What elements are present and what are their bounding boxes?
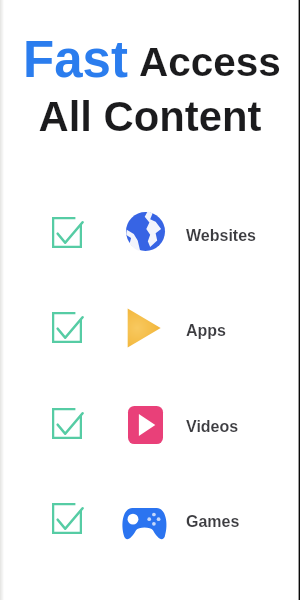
- staticText: Access: [139, 39, 281, 84]
- staticText: Games: [186, 513, 240, 531]
- staticText: Websites: [186, 227, 256, 245]
- other: Games: [121, 508, 168, 539]
- button[interactable]: Selected: [0, 495, 300, 541]
- other: Selected: [52, 408, 82, 439]
- other: Selected: [52, 312, 82, 343]
- staticText: Apps: [186, 322, 226, 340]
- other: Websites: [126, 211, 165, 252]
- other: Videos: [128, 406, 163, 444]
- staticText: All Content: [0, 93, 300, 140]
- button[interactable]: Selected: [0, 400, 300, 446]
- other: Apps: [127, 308, 161, 348]
- button[interactable]: Selected: [0, 209, 300, 255]
- other: Selected: [52, 503, 82, 534]
- button[interactable]: Selected: [0, 304, 300, 350]
- staticText: Videos: [186, 418, 239, 436]
- other: Selected: [52, 217, 82, 248]
- staticText: Fast: [23, 31, 128, 88]
